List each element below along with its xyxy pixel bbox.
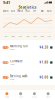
staticText: Sat — [41, 9, 44, 13]
staticText: Thu — [25, 9, 30, 13]
staticText: 12 km — [10, 64, 14, 65]
button[interactable]: Chart — [14, 90, 28, 100]
staticText: 12/04 — [25, 36, 29, 37]
staticText: Tue — [10, 9, 15, 13]
button[interactable]: Cards — [27, 90, 41, 100]
staticText: $1.80 — [40, 61, 49, 64]
button[interactable]: Home — [0, 90, 14, 100]
staticText: 12/02 — [11, 36, 15, 37]
staticText: Wed — [17, 9, 23, 13]
staticText: 12/06 — [40, 36, 44, 37]
staticText: More — [46, 96, 50, 98]
staticText: +21 — [2, 76, 8, 79]
staticText: Home — [5, 96, 9, 98]
staticText: Morning run — [10, 44, 28, 48]
staticText: 9:41 — [3, 0, 10, 5]
staticText: 5.2 km — [10, 49, 14, 50]
staticText: Chart — [19, 96, 23, 98]
button[interactable]: +08 — [0, 55, 55, 70]
button[interactable]: +12 — [0, 40, 55, 55]
button[interactable]: More — [41, 90, 55, 100]
staticText: $4.20 — [40, 46, 49, 49]
staticText: Statistics — [18, 4, 36, 10]
staticText: Evening walk — [10, 74, 27, 78]
staticText: Sun — [47, 9, 52, 13]
button[interactable]: +21 — [0, 70, 55, 85]
staticText: 2.4 km — [10, 79, 14, 80]
staticText: +12 — [2, 46, 8, 49]
staticText: 12/01 — [4, 36, 8, 37]
staticText: $0.00 — [40, 76, 49, 79]
staticText: +08 — [2, 61, 8, 64]
staticText: Cards — [32, 96, 37, 98]
staticText: Mon — [3, 9, 9, 13]
staticText: 12/07 — [47, 36, 51, 37]
staticText: 12/05 — [33, 36, 37, 37]
staticText: Fri — [33, 9, 36, 13]
staticText: Commute — [10, 59, 23, 63]
staticText: 12/03 — [18, 36, 22, 37]
